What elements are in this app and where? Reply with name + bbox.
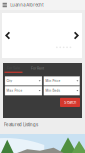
- button[interactable]: Menu: [2, 2, 8, 8]
- button[interactable]: Min Beds: [44, 86, 80, 95]
- button[interactable]: Min Price: [44, 76, 80, 85]
- staticText: Min Price: [45, 79, 60, 83]
- button[interactable]: Previous photo: [3, 29, 12, 42]
- button[interactable]: For Rent: [30, 66, 44, 73]
- staticText: Max Price: [7, 89, 23, 92]
- button[interactable]: Search: [60, 98, 80, 107]
- staticText: City: [7, 79, 13, 83]
- button[interactable]: Max Price: [5, 86, 42, 95]
- staticText: Luanna Albrecht: [10, 2, 43, 8]
- staticText: Featured Listings: [4, 122, 38, 127]
- staticText: Search: [64, 100, 76, 105]
- staticText: Min Beds: [45, 89, 60, 92]
- staticText: For Rent: [31, 66, 44, 70]
- button[interactable]: For Sale: [4, 66, 22, 73]
- button[interactable]: Next photo: [72, 29, 81, 42]
- button[interactable]: City: [5, 76, 42, 85]
